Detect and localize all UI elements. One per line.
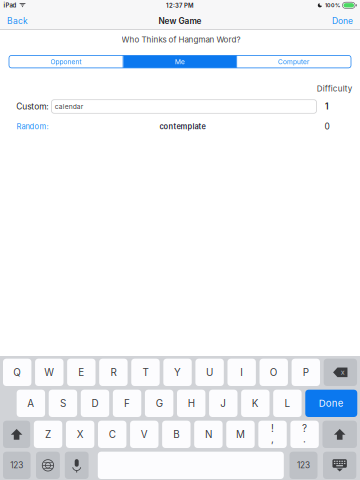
- button[interactable]: G: [145, 390, 173, 417]
- staticText: P: [303, 366, 309, 378]
- staticText: Q: [13, 366, 21, 378]
- button[interactable]: M: [226, 421, 255, 448]
- staticText: Done: [319, 397, 344, 409]
- button[interactable]: Opponent: [9, 55, 123, 68]
- button[interactable]: R: [99, 359, 128, 386]
- staticText: H: [188, 397, 195, 409]
- staticText: Computer: [278, 58, 310, 66]
- button[interactable]: !: [258, 421, 287, 448]
- button[interactable]: X: [66, 421, 94, 448]
- staticText: !: [271, 422, 274, 434]
- staticText: I: [240, 366, 243, 378]
- button[interactable]: F: [113, 390, 141, 417]
- staticText: x: [341, 368, 345, 376]
- staticText: E: [78, 366, 84, 378]
- staticText: 12:37 PM: [166, 2, 194, 9]
- staticText: T: [142, 366, 148, 378]
- staticText: ?: [302, 422, 307, 434]
- button[interactable]: Me: [123, 55, 237, 68]
- button[interactable]: Shift: [3, 421, 30, 448]
- button[interactable]: Delete: [324, 359, 357, 386]
- button[interactable]: B: [162, 421, 190, 448]
- staticText: .: [303, 433, 306, 445]
- button[interactable]: P: [292, 359, 320, 386]
- staticText: Y: [174, 366, 181, 378]
- staticText: D: [91, 397, 98, 409]
- button[interactable]: O: [259, 359, 288, 386]
- button[interactable]: T: [131, 359, 160, 386]
- button[interactable]: Dictate: [65, 452, 89, 479]
- button[interactable]: Y: [163, 359, 192, 386]
- button[interactable]: L: [273, 390, 302, 417]
- button[interactable]: I: [227, 359, 256, 386]
- button[interactable]: Random:: [14, 120, 50, 133]
- staticText: Me: [175, 58, 185, 66]
- staticText: F: [124, 397, 130, 409]
- button[interactable]: N: [194, 421, 223, 448]
- staticText: V: [141, 428, 148, 440]
- staticText: X: [77, 428, 84, 440]
- staticText: U: [206, 366, 213, 378]
- staticText: Difficulty: [317, 84, 352, 93]
- button[interactable]: U: [195, 359, 224, 386]
- button[interactable]: Hide keyboard: [323, 452, 356, 479]
- button[interactable]: 123: [289, 452, 317, 479]
- staticText: calendar: [55, 102, 84, 111]
- staticText: Z: [45, 428, 51, 440]
- button[interactable]: H: [177, 390, 205, 417]
- staticText: contemplate: [159, 122, 205, 131]
- button[interactable]: C: [98, 421, 126, 448]
- button[interactable]: Shift: [322, 421, 357, 448]
- button[interactable]: W: [35, 359, 63, 386]
- button[interactable]: D: [81, 390, 109, 417]
- button[interactable]: Computer: [237, 55, 351, 68]
- button[interactable]: Q: [3, 359, 31, 386]
- staticText: Opponent: [50, 58, 81, 66]
- staticText: iPad: [3, 2, 16, 9]
- staticText: K: [252, 397, 259, 409]
- staticText: N: [205, 428, 212, 440]
- staticText: J: [220, 397, 226, 409]
- button[interactable]: Z: [34, 421, 62, 448]
- staticText: G: [156, 397, 163, 409]
- button[interactable]: V: [130, 421, 158, 448]
- button[interactable]: ?: [290, 421, 319, 448]
- staticText: L: [284, 397, 290, 409]
- staticText: C: [109, 428, 116, 440]
- staticText: B: [173, 428, 179, 440]
- staticText: O: [270, 366, 278, 378]
- staticText: 100%: [325, 2, 340, 9]
- button[interactable]: Back: [0, 12, 36, 30]
- button[interactable]: 123: [3, 452, 31, 479]
- staticText: Random:: [16, 122, 48, 131]
- staticText: Back: [7, 16, 28, 26]
- button[interactable]: S: [49, 390, 77, 417]
- staticText: New Game: [158, 16, 201, 26]
- staticText: 123: [297, 460, 310, 470]
- staticText: 1: [325, 101, 329, 112]
- staticText: ,: [271, 433, 274, 445]
- staticText: 0: [324, 121, 329, 132]
- staticText: R: [110, 366, 116, 378]
- staticText: Custom:: [16, 101, 48, 112]
- staticText: Done: [332, 16, 353, 26]
- staticText: S: [60, 397, 66, 409]
- staticText: A: [27, 397, 34, 409]
- staticText: M: [236, 428, 245, 440]
- button[interactable]: E: [67, 359, 95, 386]
- button[interactable]: A: [17, 390, 45, 417]
- button[interactable]: Done: [324, 12, 360, 30]
- button[interactable]: Next keyboard: [36, 452, 60, 479]
- staticText: 123: [10, 460, 23, 470]
- button[interactable]: Done: [305, 390, 357, 417]
- button[interactable]: J: [209, 390, 237, 417]
- staticText: Who Thinks of Hangman Word?: [121, 35, 240, 44]
- button[interactable]: K: [241, 390, 269, 417]
- staticText: W: [44, 366, 54, 378]
